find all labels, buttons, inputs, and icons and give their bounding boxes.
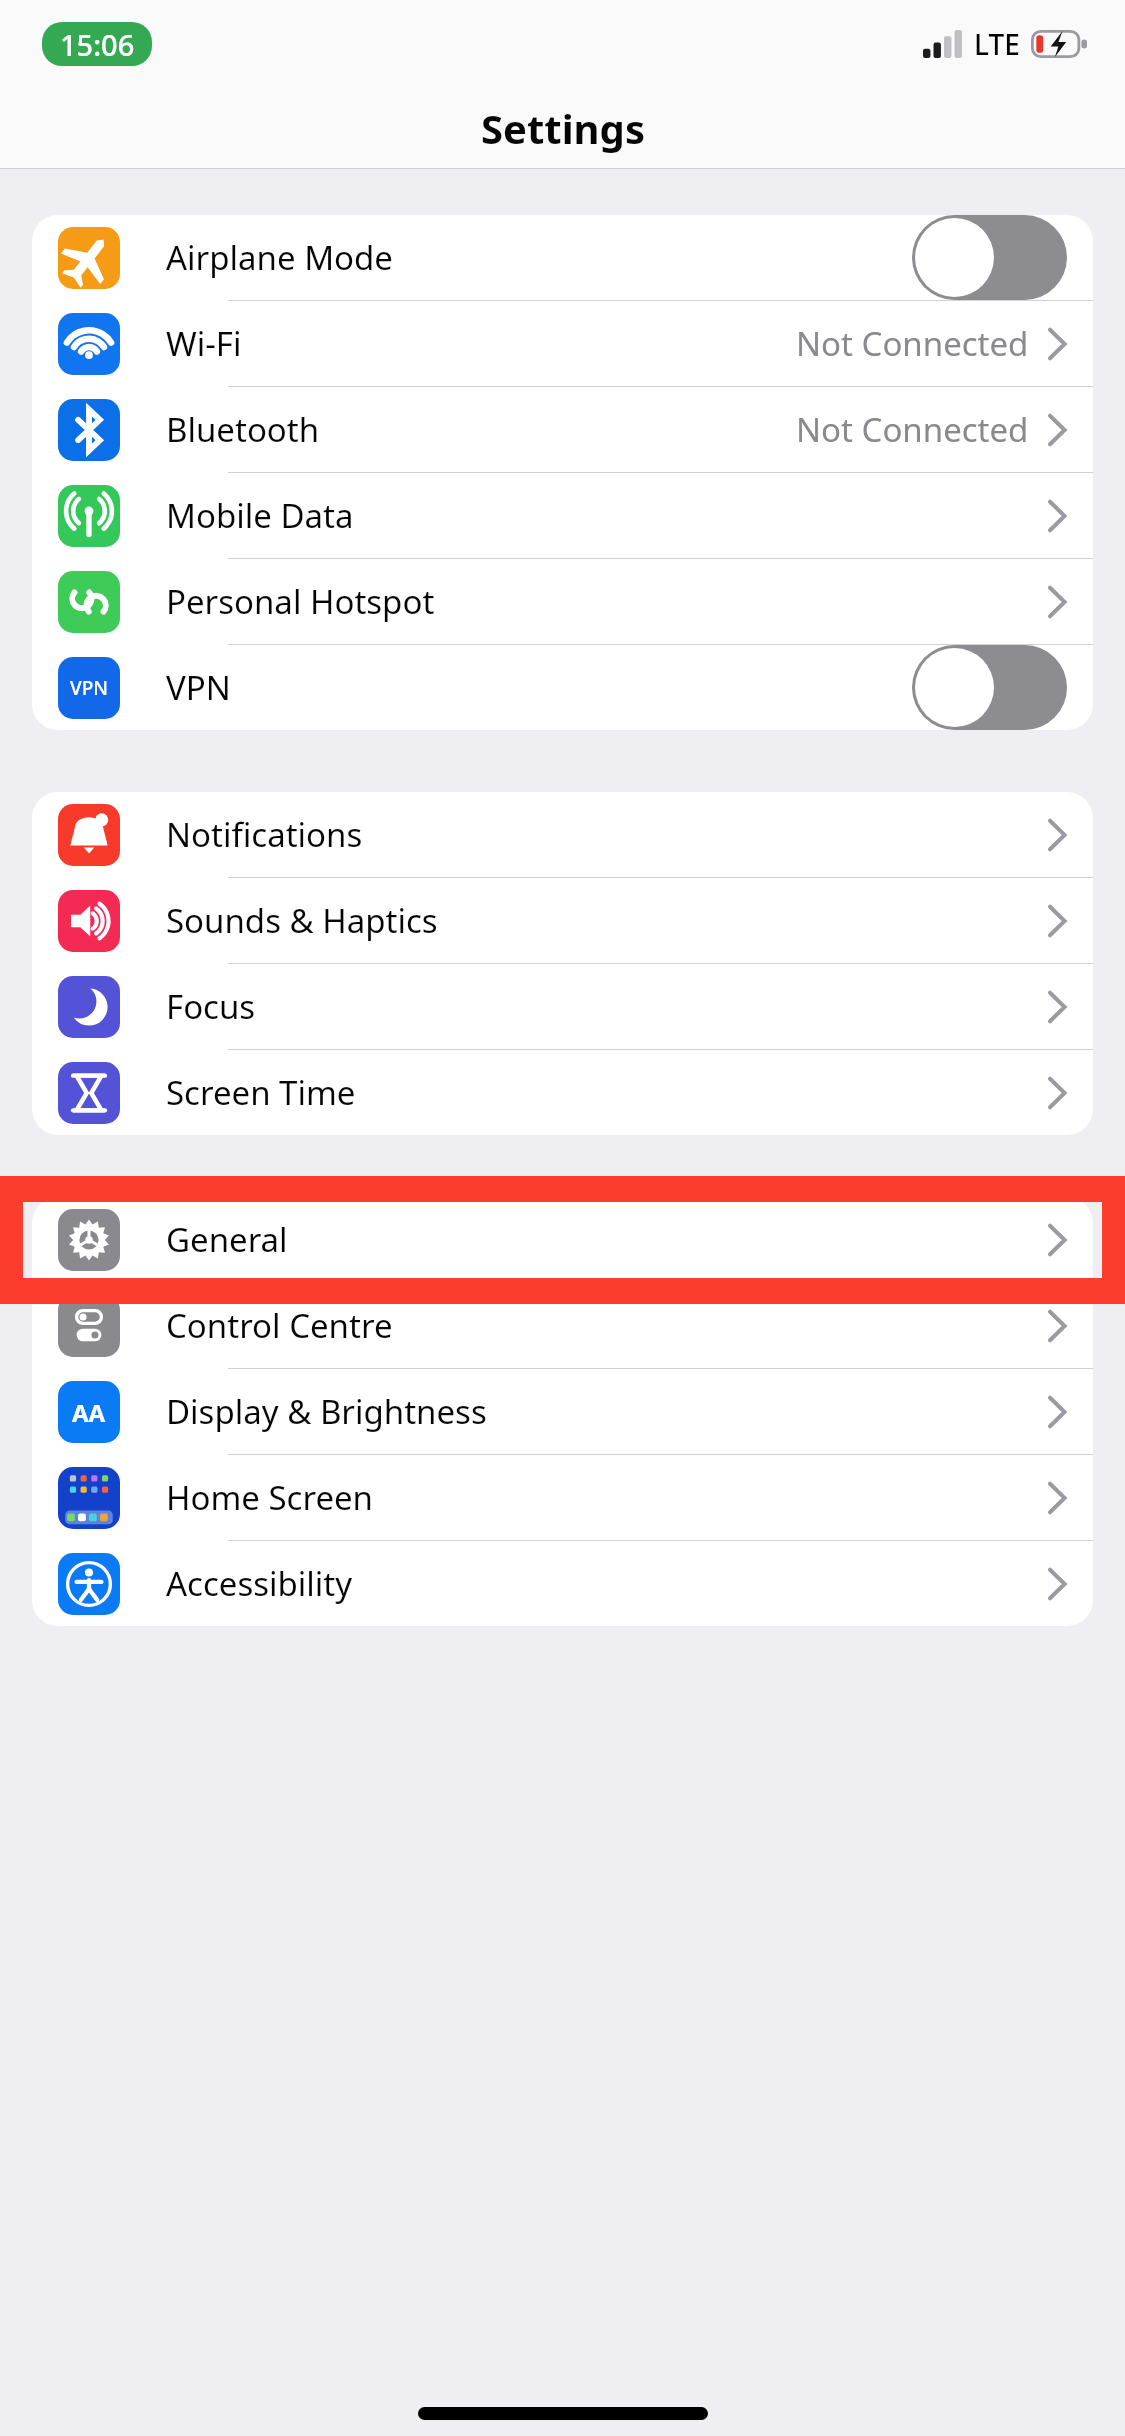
staticText: Airplane Mode <box>166 235 393 280</box>
staticText: Display & Brightness <box>166 1389 487 1434</box>
button[interactable]: Home Screen <box>32 1455 1093 1540</box>
button[interactable]: Screen Time <box>32 1050 1093 1135</box>
button[interactable]: Notifications <box>32 792 1093 877</box>
staticText: Home Screen <box>166 1475 374 1520</box>
button[interactable]: Bluetooth <box>32 387 1093 472</box>
button[interactable]: VPN <box>32 645 1093 730</box>
staticText: Sounds & Haptics <box>166 898 438 943</box>
button[interactable]: Mobile Data <box>32 473 1093 558</box>
staticText: General <box>166 1217 288 1262</box>
staticText: 15:06 <box>60 25 135 64</box>
staticText: VPN <box>166 665 231 710</box>
staticText: Focus <box>166 984 256 1029</box>
button[interactable]: Wi-Fi <box>32 301 1093 386</box>
button[interactable]: Control Centre <box>32 1283 1093 1368</box>
staticText: Screen Time <box>166 1070 356 1115</box>
button[interactable]: General <box>32 1197 1093 1282</box>
staticText: Personal Hotspot <box>166 579 435 624</box>
button[interactable]: Toggle <box>912 215 1067 300</box>
staticText: Not Connected <box>796 407 1029 452</box>
staticText: AA <box>72 1396 106 1429</box>
staticText: Control Centre <box>166 1303 393 1348</box>
staticText: Bluetooth <box>166 407 320 452</box>
button[interactable]: Personal Hotspot <box>32 559 1093 644</box>
button[interactable]: AA <box>32 1369 1093 1454</box>
button[interactable]: Sounds & Haptics <box>32 878 1093 963</box>
button[interactable]: Toggle <box>912 645 1067 730</box>
button[interactable]: Accessibility <box>32 1541 1093 1626</box>
staticText: Settings <box>481 101 645 155</box>
staticText: Wi-Fi <box>166 321 242 366</box>
button[interactable]: Focus <box>32 964 1093 1049</box>
button[interactable]: Airplane Mode <box>32 215 1093 300</box>
staticText: Accessibility <box>166 1561 353 1606</box>
staticText: Not Connected <box>796 321 1029 366</box>
staticText: VPN <box>70 675 109 701</box>
staticText: Notifications <box>166 812 363 857</box>
staticText: LTE <box>974 25 1020 63</box>
staticText: Mobile Data <box>166 493 354 538</box>
